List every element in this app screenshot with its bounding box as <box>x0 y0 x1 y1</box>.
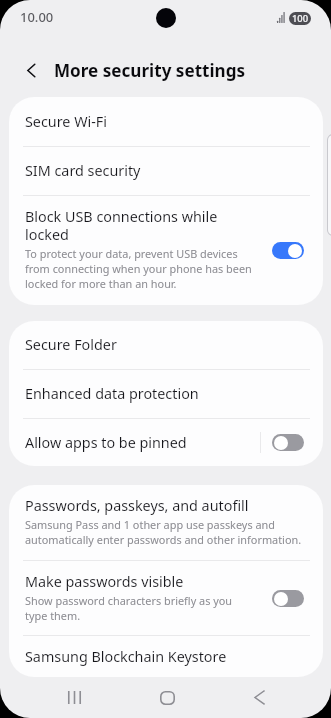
staticText: 10.00 <box>20 8 54 26</box>
button[interactable]: Secure Folder <box>9 321 323 369</box>
button[interactable]: Home <box>145 677 189 718</box>
staticText: Secure Folder <box>25 336 117 354</box>
button[interactable]: Allow apps to be pinned <box>25 419 260 466</box>
button[interactable]: SIM card security <box>9 147 323 195</box>
button[interactable]: Recent apps <box>52 677 96 718</box>
button[interactable]: Passwords, passkeys, and autofill <box>9 485 323 560</box>
staticText: 100 <box>292 12 309 25</box>
staticText: Make passwords visible <box>25 573 184 591</box>
staticText: SIM card security <box>25 162 141 180</box>
button[interactable]: Switch on <box>272 242 304 259</box>
staticText: More security settings <box>54 59 246 82</box>
button[interactable]: Switch off <box>272 590 304 607</box>
staticText: To protect your data, prevent USB device… <box>25 246 253 291</box>
button[interactable]: Samsung Blockchain Keystore <box>9 636 323 677</box>
button[interactable]: Enhanced data protection <box>9 370 323 418</box>
button[interactable]: Make passwords visible <box>9 561 323 635</box>
button[interactable]: Secure Wi-Fi <box>9 97 323 146</box>
staticText: Samsung Pass and 1 other app use passkey… <box>25 517 305 547</box>
button[interactable]: Switch off <box>272 434 304 451</box>
staticText: Passwords, passkeys, and autofill <box>25 497 249 515</box>
staticText: Allow apps to be pinned <box>25 434 187 452</box>
staticText: Samsung Blockchain Keystore <box>25 648 227 666</box>
staticText: Show password characters briefly as you … <box>25 593 253 623</box>
staticText: Secure Wi-Fi <box>25 113 107 131</box>
button[interactable]: Block USB connections while locked <box>9 196 323 305</box>
button[interactable]: Navigate up <box>20 59 42 81</box>
staticText: Block USB connections while locked <box>25 208 253 244</box>
button[interactable]: Back <box>237 677 281 718</box>
staticText: Enhanced data protection <box>25 385 199 403</box>
